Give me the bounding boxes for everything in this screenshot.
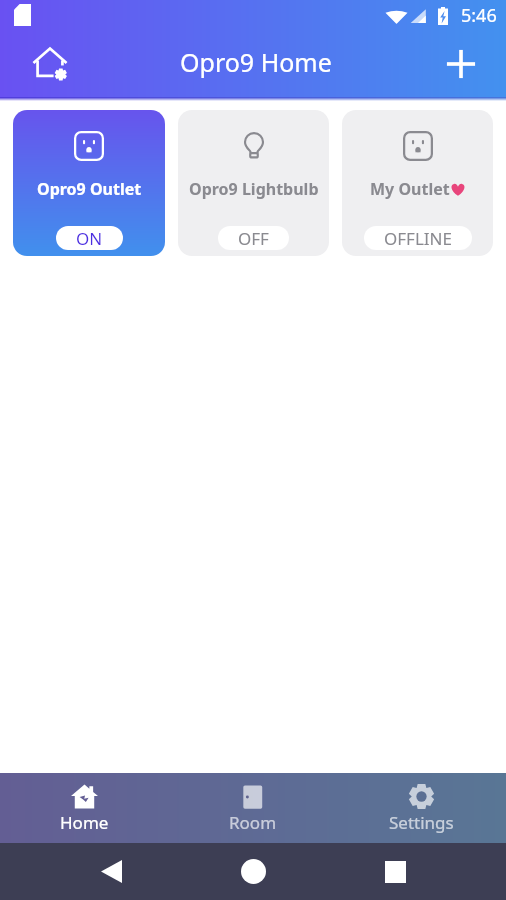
staticText: Settings [389, 811, 454, 834]
button[interactable]: Opro9 Lightbulb [178, 110, 329, 256]
button[interactable]: Home [165, 843, 341, 900]
staticText: Room [229, 811, 277, 834]
button[interactable]: Room [168, 773, 337, 843]
staticText: OFF [238, 227, 269, 250]
staticText: 5:46 [461, 3, 497, 28]
button[interactable]: Settings [337, 773, 506, 843]
staticText: OFFLINE [384, 227, 452, 250]
staticText: Home [60, 811, 109, 834]
button[interactable]: My Outlet [342, 110, 493, 256]
staticText: My Outlet [370, 178, 450, 200]
staticText: ON [76, 227, 103, 250]
button[interactable]: OFF [238, 226, 269, 250]
button[interactable]: Back [57, 843, 165, 900]
button[interactable]: Home [0, 773, 168, 843]
button[interactable]: Add device [445, 48, 477, 80]
staticText: Opro9 Home [180, 45, 332, 79]
button[interactable]: Home settings [32, 46, 68, 82]
button[interactable]: ON [76, 226, 103, 250]
staticText: Opro9 Outlet [37, 178, 142, 200]
button[interactable]: Recent apps [341, 843, 449, 900]
staticText: Opro9 Lightbulb [189, 178, 319, 200]
button[interactable]: Opro9 Outlet [13, 110, 165, 256]
button[interactable]: OFFLINE [384, 226, 452, 250]
